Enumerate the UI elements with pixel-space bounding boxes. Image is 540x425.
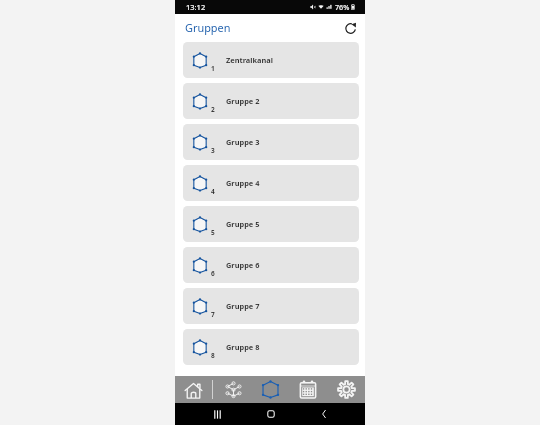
- staticText: 7: [211, 310, 215, 319]
- button[interactable]: Settings: [331, 376, 361, 403]
- button[interactable]: 5: [183, 206, 359, 242]
- button[interactable]: Network: [218, 376, 248, 403]
- button[interactable]: Home: [260, 403, 282, 425]
- staticText: 5: [211, 228, 215, 237]
- button[interactable]: 6: [183, 247, 359, 283]
- staticText: 4: [211, 187, 215, 196]
- staticText: 13:12: [186, 2, 206, 12]
- staticText: Gruppe 2: [226, 96, 260, 106]
- button[interactable]: Home: [178, 376, 208, 403]
- button[interactable]: 1: [183, 42, 359, 78]
- staticText: 6: [211, 269, 215, 278]
- staticText: Gruppe 5: [226, 219, 260, 229]
- staticText: Zentralkanal: [226, 55, 273, 65]
- button[interactable]: 7: [183, 288, 359, 324]
- button[interactable]: 3: [183, 124, 359, 160]
- staticText: Gruppe 7: [226, 301, 260, 311]
- button[interactable]: Recents: [206, 403, 228, 425]
- button[interactable]: 8: [183, 329, 359, 365]
- staticText: Gruppe 8: [226, 342, 260, 352]
- staticText: 8: [211, 351, 215, 360]
- staticText: 2: [211, 105, 215, 114]
- button[interactable]: Groups: [255, 376, 285, 403]
- staticText: Gruppe 6: [226, 260, 260, 270]
- staticText: 1: [211, 64, 215, 73]
- staticText: Gruppe 3: [226, 137, 260, 147]
- button[interactable]: Calendar: [293, 376, 323, 403]
- button[interactable]: Refresh: [342, 19, 360, 37]
- button[interactable]: 2: [183, 83, 359, 119]
- staticText: Gruppe 4: [226, 178, 260, 188]
- button[interactable]: Back: [313, 403, 335, 425]
- staticText: 76%: [335, 2, 350, 12]
- staticText: 3: [211, 146, 215, 155]
- staticText: Gruppen: [185, 20, 231, 35]
- button[interactable]: 4: [183, 165, 359, 201]
